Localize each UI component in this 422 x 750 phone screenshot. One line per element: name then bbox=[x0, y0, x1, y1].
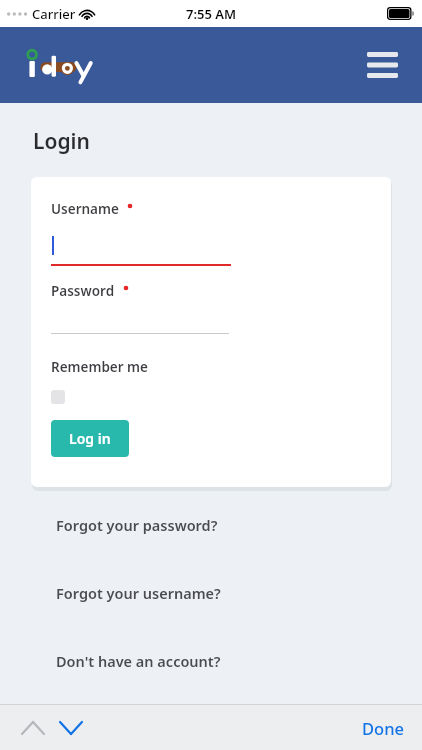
staticText: 7:55 AM bbox=[186, 5, 237, 23]
button[interactable]: Next field bbox=[52, 708, 90, 748]
staticText: Login bbox=[33, 127, 90, 156]
staticText: Forgot your username? bbox=[56, 583, 221, 603]
staticText: Forgot your password? bbox=[56, 515, 218, 535]
button[interactable]: Don't have an account? bbox=[0, 648, 422, 674]
button[interactable]: Forgot your password? bbox=[0, 512, 422, 538]
staticText: Carrier bbox=[32, 5, 76, 23]
button[interactable]: Remember me checkbox bbox=[51, 390, 65, 404]
staticText: Done bbox=[362, 717, 404, 739]
staticText: Log in bbox=[69, 429, 111, 448]
button[interactable]: Done bbox=[362, 717, 404, 739]
staticText: Remember me bbox=[51, 358, 148, 376]
button[interactable]: Log in bbox=[51, 420, 129, 457]
staticText: Username bbox=[51, 200, 119, 218]
button[interactable]: Previous field bbox=[14, 708, 52, 748]
staticText: Password bbox=[51, 282, 115, 300]
staticText: Don't have an account? bbox=[56, 651, 221, 671]
button[interactable]: idey home bbox=[26, 47, 98, 85]
button[interactable]: Menu bbox=[360, 43, 404, 87]
button[interactable]: Forgot your username? bbox=[0, 580, 422, 606]
